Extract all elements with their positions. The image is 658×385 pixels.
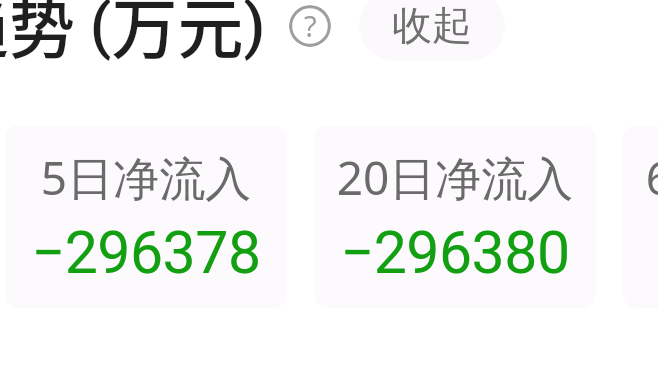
- staticText: 20日净流入: [314, 146, 596, 209]
- staticText: 5日净流入: [5, 146, 287, 209]
- staticText: −296378: [5, 218, 287, 287]
- staticText: 趋势 (万元): [0, 0, 266, 72]
- staticText: 60日净流入: [623, 146, 658, 209]
- button[interactable]: 5日净流入: [5, 125, 287, 308]
- staticText: 收起: [392, 0, 472, 50]
- staticText: −296380: [314, 218, 596, 287]
- button[interactable]: 20日净流入: [314, 125, 596, 308]
- button[interactable]: Help: [289, 5, 331, 47]
- staticText: ?: [304, 6, 317, 45]
- button[interactable]: 60日净流入: [623, 125, 658, 308]
- button[interactable]: 收起: [359, 0, 505, 61]
